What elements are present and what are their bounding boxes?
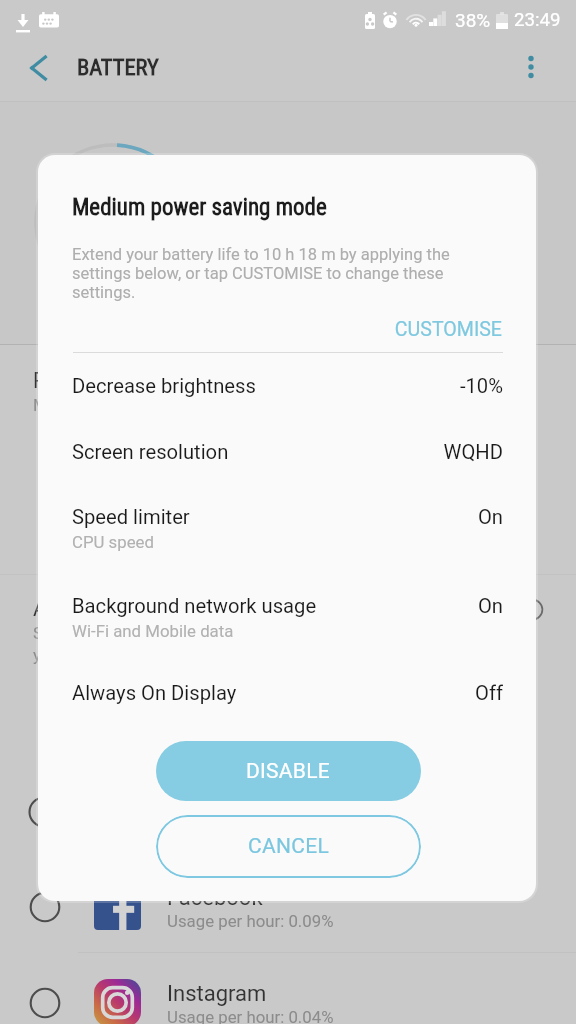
button[interactable]: Navigate up <box>23 49 61 87</box>
button[interactable]: DISABLE <box>156 741 421 801</box>
button[interactable]: Speed limiter <box>38 499 536 571</box>
staticText: On <box>343 594 503 618</box>
staticText: CANCEL <box>248 834 330 859</box>
staticText: -10% <box>343 374 503 398</box>
button[interactable]: App power monitor <box>33 595 473 637</box>
staticText: Power saving mode <box>33 368 219 393</box>
button[interactable]: CUSTOMISE <box>322 318 502 341</box>
staticText: WQHD <box>343 440 503 464</box>
button[interactable]: Facebook <box>0 861 576 953</box>
staticText: Usage per hour: 0.09% <box>167 911 334 931</box>
staticText: CPU speed <box>72 532 154 552</box>
button[interactable]: Background network usage <box>38 588 536 660</box>
staticText: 38% <box>455 9 491 31</box>
button[interactable]: Power saving mode <box>33 367 473 392</box>
staticText: Instagram <box>167 981 267 1007</box>
button[interactable]: More options <box>510 46 552 88</box>
staticText: Medium power saving mode <box>72 194 327 221</box>
button[interactable]: Screen resolution <box>38 434 536 484</box>
staticText: Screen resolution <box>72 440 229 464</box>
staticText: App power monitor <box>33 596 213 621</box>
staticText: Facebook <box>167 885 263 911</box>
button[interactable]: Always On Display <box>38 675 536 725</box>
staticText: Background network usage <box>72 594 317 618</box>
staticText: Usage per hour: 0.04% <box>167 1007 334 1024</box>
staticText: BATTERY <box>77 54 159 80</box>
staticText: Decrease brightness <box>72 374 256 398</box>
button[interactable]: Instagram <box>0 957 576 1024</box>
staticText: Medium <box>33 395 95 415</box>
staticText: Off <box>343 681 503 705</box>
staticText: 23:49 <box>514 9 561 31</box>
staticText: Always On Display <box>72 681 237 705</box>
button[interactable]: Decrease brightness <box>38 368 536 418</box>
staticText: Save battery by stopping apps you aren't… <box>33 623 258 665</box>
staticText: Extend your battery life to 10 h 18 m by… <box>72 245 462 302</box>
staticText: DISABLE <box>246 759 331 784</box>
staticText: Speed limiter <box>72 505 190 529</box>
button[interactable]: CANCEL <box>156 815 421 878</box>
staticText: On <box>343 505 503 529</box>
staticText: Wi-Fi and Mobile data <box>72 621 234 641</box>
